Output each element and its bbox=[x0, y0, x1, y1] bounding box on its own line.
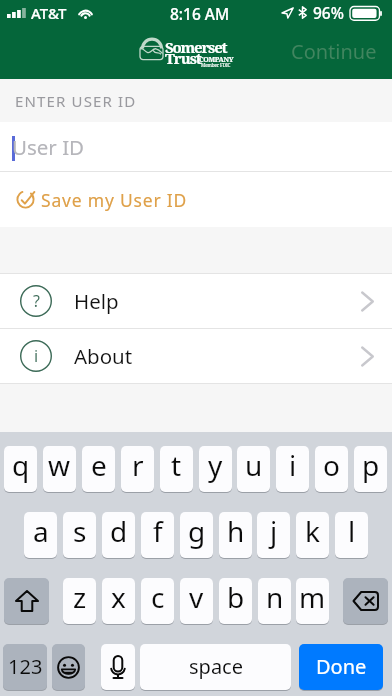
staticText: h bbox=[227, 512, 245, 550]
button[interactable]: x bbox=[102, 578, 135, 624]
staticText: User ID bbox=[12, 133, 85, 161]
button[interactable]: s bbox=[63, 512, 96, 558]
button[interactable]: g bbox=[180, 512, 213, 558]
staticText: Trust bbox=[165, 48, 201, 68]
button[interactable]: v bbox=[180, 578, 213, 624]
button[interactable]: Continue bbox=[278, 31, 390, 72]
staticText: Continue bbox=[291, 38, 377, 65]
staticText: z bbox=[73, 578, 87, 616]
button[interactable]: f bbox=[141, 512, 174, 558]
staticText: p bbox=[362, 446, 380, 484]
button[interactable]: p bbox=[354, 446, 387, 492]
button[interactable]: i bbox=[0, 329, 392, 383]
button[interactable]: a bbox=[24, 512, 57, 558]
staticText: d bbox=[110, 512, 128, 550]
button[interactable]: y bbox=[199, 446, 232, 492]
button[interactable]: Emoji bbox=[52, 644, 85, 690]
staticText: space bbox=[189, 653, 243, 680]
button[interactable]: Backspace bbox=[343, 578, 388, 624]
button[interactable]: m bbox=[296, 578, 329, 624]
staticText: k bbox=[305, 512, 320, 550]
button[interactable]: c bbox=[141, 578, 174, 624]
staticText: b bbox=[227, 578, 245, 616]
staticText: 96% bbox=[313, 2, 344, 23]
button[interactable]: z bbox=[63, 578, 96, 624]
button[interactable]: Dictation bbox=[101, 644, 135, 690]
button[interactable]: Save my User ID bbox=[0, 172, 392, 227]
staticText: o bbox=[323, 446, 340, 484]
staticText: Somerset bbox=[165, 37, 227, 57]
staticText: 8:16 AM bbox=[170, 3, 230, 24]
button[interactable]: i bbox=[276, 446, 309, 492]
button[interactable]: Done bbox=[299, 644, 383, 690]
staticText: s bbox=[73, 512, 87, 550]
staticText: AT&T bbox=[31, 3, 67, 23]
button[interactable]: Shift bbox=[4, 578, 49, 624]
staticText: Save my User ID bbox=[41, 188, 188, 212]
button[interactable]: u bbox=[237, 446, 270, 492]
staticText: Help bbox=[74, 287, 119, 315]
staticText: m bbox=[299, 578, 326, 616]
staticText: j bbox=[270, 512, 278, 550]
staticText: i bbox=[289, 446, 297, 484]
staticText: COMPANY bbox=[199, 55, 234, 65]
button[interactable]: q bbox=[4, 446, 37, 492]
staticText: n bbox=[266, 578, 284, 616]
staticText: y bbox=[208, 446, 223, 484]
button[interactable]: ? bbox=[0, 274, 392, 328]
staticText: Done bbox=[316, 653, 367, 680]
staticText: l bbox=[348, 512, 356, 550]
button[interactable]: d bbox=[102, 512, 135, 558]
staticText: e bbox=[91, 446, 107, 484]
button[interactable]: User ID bbox=[0, 122, 392, 171]
button[interactable]: r bbox=[121, 446, 154, 492]
staticText: About bbox=[74, 342, 133, 370]
staticText: Member FDIC bbox=[201, 62, 231, 68]
staticText: ENTER USER ID bbox=[15, 91, 137, 111]
staticText: u bbox=[245, 446, 263, 484]
button[interactable]: j bbox=[257, 512, 290, 558]
staticText: r bbox=[132, 446, 144, 484]
staticText: ? bbox=[33, 290, 40, 312]
button[interactable]: k bbox=[296, 512, 329, 558]
staticText: w bbox=[48, 446, 71, 484]
staticText: v bbox=[189, 578, 204, 616]
button[interactable]: h bbox=[219, 512, 252, 558]
button[interactable]: e bbox=[82, 446, 115, 492]
button[interactable]: 123 bbox=[3, 644, 47, 690]
button[interactable]: l bbox=[335, 512, 368, 558]
staticText: i bbox=[34, 345, 39, 367]
staticText: 123 bbox=[8, 653, 43, 680]
button[interactable]: o bbox=[315, 446, 348, 492]
staticText: g bbox=[188, 512, 206, 550]
staticText: x bbox=[111, 578, 126, 616]
button[interactable]: b bbox=[219, 578, 252, 624]
button[interactable]: n bbox=[258, 578, 291, 624]
staticText: t bbox=[171, 446, 182, 484]
staticText: a bbox=[33, 512, 49, 550]
button[interactable]: space bbox=[140, 644, 291, 690]
staticText: c bbox=[151, 578, 165, 616]
button[interactable]: t bbox=[160, 446, 193, 492]
button[interactable]: w bbox=[43, 446, 76, 492]
staticText: q bbox=[12, 446, 30, 484]
staticText: f bbox=[153, 512, 163, 550]
